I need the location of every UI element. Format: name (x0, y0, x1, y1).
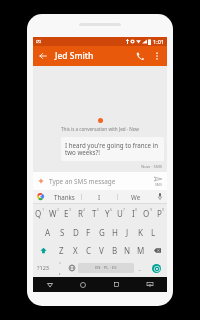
staticText: V (99, 245, 104, 256)
button[interactable]: Y (102, 204, 115, 223)
staticText: S (60, 227, 65, 238)
staticText: ° (59, 261, 61, 267)
button[interactable]: Thanks (47, 190, 81, 203)
staticText: W (49, 208, 57, 219)
button[interactable]: K (134, 223, 147, 241)
staticText: 4 (83, 207, 86, 212)
button[interactable]: Backspace (147, 241, 167, 259)
staticText: 5 (97, 207, 100, 212)
button[interactable]: . (134, 259, 146, 277)
button[interactable]: F (82, 223, 95, 241)
button[interactable]: P (154, 204, 167, 223)
staticText: L (151, 227, 156, 238)
button[interactable]: J (121, 223, 134, 241)
button[interactable]: Shift (33, 241, 54, 259)
button[interactable]: T (89, 204, 102, 223)
staticText: This is a conversation with Jed · Now (61, 126, 139, 132)
button[interactable]: Recent apps (99, 277, 133, 292)
staticText: P (157, 208, 162, 219)
staticText: 0 (162, 207, 165, 212)
staticText: C (86, 245, 92, 256)
button[interactable]: Z (54, 241, 68, 259)
staticText: A (45, 227, 51, 238)
staticText: R (78, 208, 83, 219)
button[interactable]: M (134, 241, 147, 259)
button[interactable]: Change language (66, 259, 78, 277)
button[interactable]: We (118, 190, 153, 203)
staticText: U (117, 208, 123, 219)
staticText: H (112, 227, 118, 238)
staticText: F (86, 227, 91, 238)
staticText: T (92, 208, 97, 219)
staticText: 1 (42, 207, 45, 212)
button[interactable]: O (141, 204, 154, 223)
button[interactable]: C (82, 241, 95, 259)
button[interactable]: EN · PL · ES (78, 263, 134, 273)
button[interactable]: Emoji (146, 259, 167, 277)
button[interactable]: W (47, 204, 61, 223)
staticText: SMS (155, 182, 162, 187)
staticText: Jed Smith (55, 50, 94, 62)
button[interactable]: Type an SMS message (33, 172, 167, 190)
button[interactable]: I heard you're going to france in two we… (61, 137, 164, 161)
button[interactable]: Google search (33, 190, 47, 203)
button[interactable]: I (82, 190, 117, 203)
staticText: 7 (123, 207, 126, 212)
staticText: ?123 (37, 264, 50, 272)
button[interactable]: Back (33, 277, 66, 292)
staticText: Z (59, 245, 64, 256)
staticText: O (143, 208, 150, 219)
button[interactable]: Q (33, 204, 47, 223)
button[interactable]: D (69, 223, 82, 241)
button[interactable]: S (55, 223, 69, 241)
button[interactable]: Send SMS (149, 172, 167, 190)
button[interactable]: X (68, 241, 82, 259)
staticText: I (98, 193, 101, 201)
button[interactable]: Back (33, 46, 53, 66)
button[interactable]: N (121, 241, 134, 259)
button[interactable]: B (108, 241, 121, 259)
button[interactable]: More options (149, 48, 165, 64)
button[interactable]: ?123 (33, 259, 54, 277)
staticText: X (73, 245, 78, 256)
button[interactable]: Voice input (153, 190, 167, 203)
button[interactable]: ° (54, 259, 66, 277)
staticText: K (138, 227, 143, 238)
button[interactable]: I (128, 204, 141, 223)
staticText: G (99, 227, 105, 238)
button[interactable]: H (108, 223, 121, 241)
staticText: M (137, 245, 145, 256)
staticText: Y (105, 208, 110, 219)
staticText: EN · PL · ES (95, 265, 117, 271)
staticText: J (126, 227, 129, 238)
staticText: Thanks (54, 193, 75, 201)
staticText: Type an SMS message (49, 177, 116, 186)
staticText: 8 (135, 207, 138, 212)
button[interactable]: U (115, 204, 128, 223)
button[interactable]: A (41, 223, 55, 241)
button[interactable]: Home (66, 277, 99, 292)
staticText: , (59, 267, 61, 276)
staticText: 3 (69, 207, 72, 212)
staticText: D (73, 227, 79, 238)
staticText: Now · SMS (141, 163, 163, 169)
staticText: E (64, 208, 69, 219)
staticText: 2 (57, 207, 60, 212)
staticText: B (112, 245, 118, 256)
staticText: N (124, 245, 131, 256)
button[interactable]: E (61, 204, 75, 223)
staticText: I (132, 208, 135, 219)
button[interactable]: L (147, 223, 160, 241)
button[interactable]: Hide keyboard (133, 277, 167, 292)
staticText: 6 (110, 207, 113, 212)
button[interactable]: G (95, 223, 108, 241)
button[interactable]: V (95, 241, 108, 259)
button[interactable]: R (75, 204, 89, 223)
staticText: 9 (150, 207, 153, 212)
staticText: I heard you're going to france in two we… (65, 141, 160, 157)
staticText: Q (35, 208, 42, 219)
staticText: . (139, 264, 141, 273)
staticText: We (131, 193, 141, 201)
button[interactable]: Call (131, 47, 149, 65)
staticText: 1:01 (153, 38, 164, 45)
